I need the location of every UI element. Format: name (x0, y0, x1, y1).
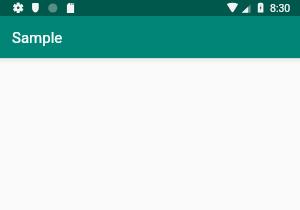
other: Wi-Fi, mobile signal, battery charging (0, 0, 300, 16)
staticText: 8:30 (270, 2, 291, 14)
staticText: Sample (12, 29, 63, 47)
other: Notifications: settings, security, sync,… (0, 0, 300, 16)
